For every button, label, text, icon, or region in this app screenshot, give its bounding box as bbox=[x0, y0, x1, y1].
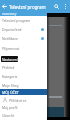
button[interactable]: Notifikace bbox=[0, 34, 47, 43]
button[interactable]: More options bbox=[61, 2, 70, 11]
staticText: Kategorie bbox=[2, 74, 44, 79]
staticText: Notifikace bbox=[2, 36, 41, 41]
button[interactable]: Televizní program bbox=[0, 16, 47, 25]
staticText: Moje filmy bbox=[2, 83, 44, 88]
button[interactable]: Ukončit bbox=[0, 111, 47, 120]
staticText: Doporučené bbox=[2, 27, 41, 32]
button[interactable]: Kategorie bbox=[0, 72, 47, 81]
staticText: Televizní program bbox=[9, 4, 46, 10]
staticText: Nastavení bbox=[2, 57, 18, 62]
staticText: Přehled bbox=[2, 65, 44, 70]
button[interactable]: MŮJ ÚČET bbox=[0, 89, 47, 95]
button[interactable]: Doporučené bbox=[0, 25, 47, 34]
staticText: Přihlásit se bbox=[9, 98, 27, 103]
staticText: MŮJ ÚČET bbox=[2, 90, 19, 95]
button[interactable]: Nastavení bbox=[1, 56, 18, 62]
button[interactable]: Back bbox=[0, 2, 9, 11]
staticText: Ukončit bbox=[2, 113, 44, 118]
button[interactable]: Přihlásit se bbox=[0, 96, 47, 104]
staticText: Přijemnost bbox=[2, 46, 44, 51]
button[interactable]: Můj profil bbox=[0, 103, 47, 112]
staticText: Novinky bbox=[2, 11, 17, 16]
staticText: Můj profil bbox=[2, 105, 44, 110]
button[interactable]: Search bbox=[52, 2, 61, 11]
button[interactable]: Přehled bbox=[0, 63, 47, 72]
staticText: Televizní program bbox=[2, 18, 44, 23]
button[interactable]: Moje filmy bbox=[0, 81, 47, 90]
button[interactable]: Přijemnost bbox=[0, 44, 47, 53]
